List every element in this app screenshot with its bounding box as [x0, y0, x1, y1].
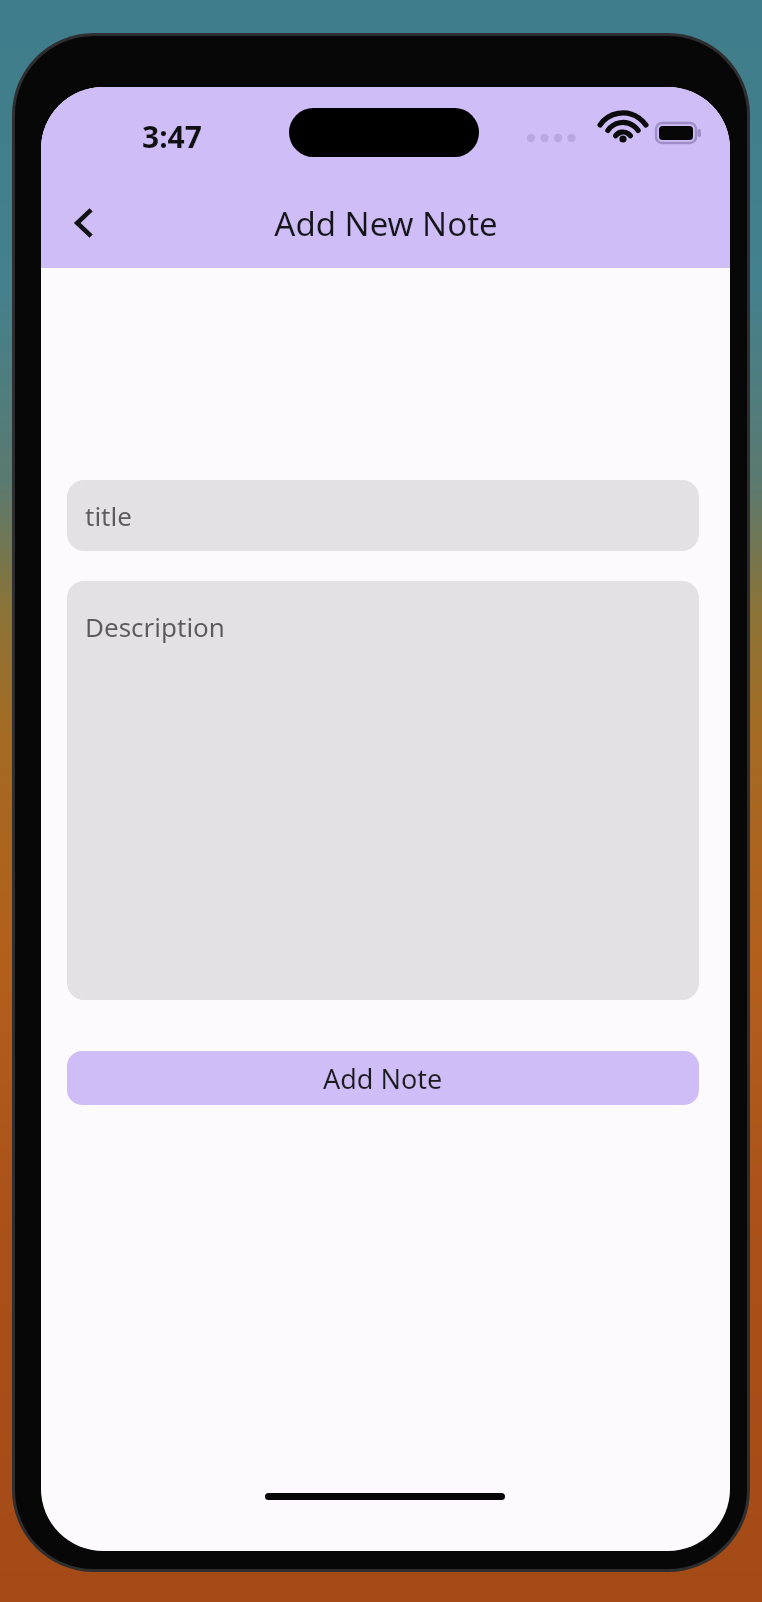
button[interactable]: title	[67, 480, 699, 551]
button[interactable]: Back	[57, 196, 111, 250]
staticText: title	[85, 498, 132, 533]
button[interactable]: Description	[67, 581, 699, 1000]
staticText: Add New Note	[274, 201, 498, 246]
staticText: Description	[85, 609, 225, 644]
staticText: 3:47	[142, 116, 202, 157]
staticText: Add Note	[323, 1060, 443, 1097]
button[interactable]: Add Note	[67, 1051, 699, 1105]
